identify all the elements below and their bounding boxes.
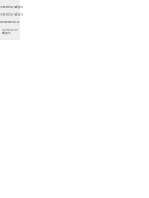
staticText: consectetur adipis [0, 20, 20, 24]
staticText: consectetur adipis [2, 28, 18, 35]
staticText: consectetur adipis [0, 5, 22, 9]
staticText: consectetur adipis [0, 13, 22, 16]
